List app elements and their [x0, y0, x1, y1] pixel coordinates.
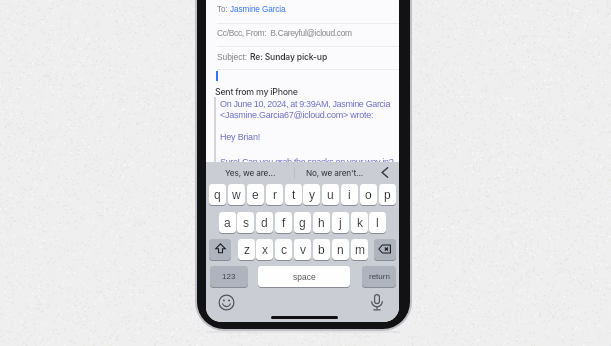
staticText: v [300, 243, 306, 256]
staticText: p [384, 188, 391, 201]
staticText: k [357, 216, 363, 229]
staticText: To: [217, 5, 230, 14]
staticText: e [252, 188, 259, 201]
staticText: c [281, 243, 287, 256]
staticText: l [376, 216, 379, 229]
staticText: Yes, we are... [225, 168, 276, 178]
staticText: o [365, 188, 372, 201]
staticText: Subject: [217, 52, 250, 61]
staticText: t [292, 188, 296, 201]
staticText: Hey Brian! [220, 132, 261, 142]
staticText: Re: Sunday pick-up [250, 52, 328, 62]
staticText: j [339, 216, 342, 229]
staticText: g [299, 216, 306, 229]
staticText: space [293, 272, 316, 281]
staticText: <Jasmine.Garcia67@icloud.com> wrote: [220, 110, 374, 120]
staticText: Sure! Can you grab the snacks on your wa… [220, 157, 394, 167]
staticText: 123 [222, 272, 236, 281]
staticText: Jasmine Garcia [230, 5, 286, 14]
staticText: x [262, 243, 268, 256]
staticText: i [348, 188, 351, 201]
staticText: m [355, 243, 365, 256]
staticText: z [244, 243, 250, 256]
staticText: return [369, 272, 390, 281]
staticText: y [309, 188, 315, 201]
staticText: s [243, 216, 249, 229]
staticText: h [318, 216, 325, 229]
staticText: Cc/Bcc, From: B.Careyful@icloud.com [217, 28, 352, 37]
staticText: No, we aren't... [306, 168, 364, 178]
staticText: Sent from my iPhone [215, 86, 298, 97]
staticText: u [327, 188, 334, 201]
staticText: r [273, 188, 277, 201]
staticText: b [318, 243, 325, 256]
staticText: a [224, 216, 231, 229]
staticText: n [337, 243, 344, 256]
staticText: w [232, 188, 241, 201]
staticText: On June 10, 2024, at 9:39AM, Jasmine Gar… [220, 99, 391, 109]
staticText: f [282, 216, 286, 229]
staticText: q [214, 188, 221, 201]
staticText: d [261, 216, 268, 229]
